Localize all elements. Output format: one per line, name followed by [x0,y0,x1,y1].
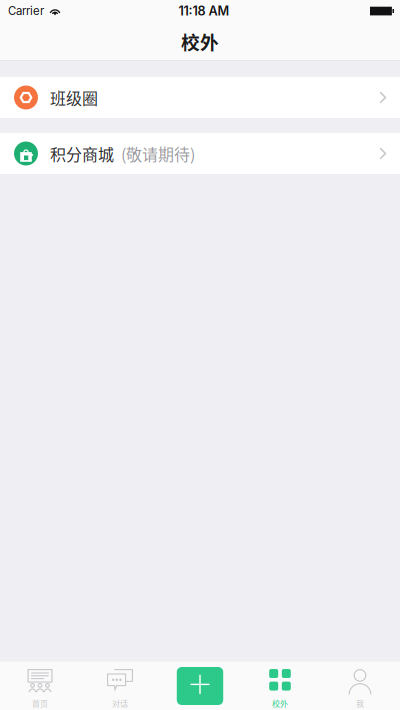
staticText: 校外 [272,697,288,709]
button[interactable]: 班级圈 [0,77,400,118]
button[interactable]: 对话 [80,661,160,710]
staticText: 我 [356,697,364,709]
staticText: Carrier [8,4,44,18]
staticText: 校外 [181,28,219,55]
button[interactable]: New post [177,667,223,705]
button[interactable]: 首页 [0,661,80,710]
button[interactable]: 我 [320,661,400,710]
button[interactable]: 积分商城 [0,133,400,174]
staticText: (敬请期待) [121,142,195,165]
staticText: 班级圈 [50,86,98,109]
staticText: 首页 [32,697,48,709]
staticText: 对话 [112,697,128,709]
staticText: 11:18 AM [178,3,229,19]
staticText: 积分商城 [50,142,114,165]
button[interactable]: 校外 [240,661,320,710]
